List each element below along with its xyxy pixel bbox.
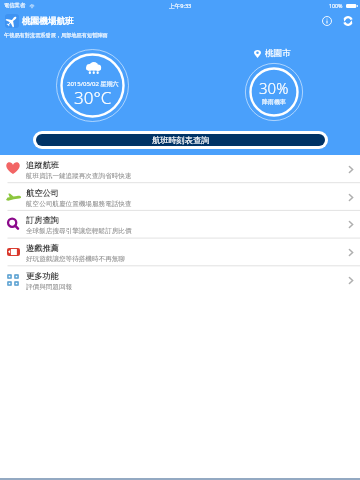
button[interactable]: 更多功能 xyxy=(0,266,360,294)
staticText: 30°C xyxy=(74,86,112,109)
staticText: 桃園市 xyxy=(265,48,291,59)
button[interactable]: 追蹤航班 xyxy=(0,155,360,183)
staticText: 桃園機場航班 xyxy=(22,16,74,27)
staticText: 遊戲推薦 xyxy=(26,243,59,253)
staticText: 100% xyxy=(329,2,343,9)
button[interactable]: 航班時刻表查詢 xyxy=(36,134,325,146)
staticText: 上午9:33 xyxy=(169,2,192,10)
button[interactable]: 桃園機場航班 xyxy=(5,14,74,28)
button[interactable]: Refresh xyxy=(340,13,356,29)
button[interactable]: 遊戲推薦 xyxy=(0,238,360,266)
staticText: 追蹤航班 xyxy=(26,160,59,170)
staticText: 降雨機率 xyxy=(262,98,286,106)
staticText: 更多功能 xyxy=(26,271,59,281)
staticText: 航空公司航廈位置機場服務電話快查 xyxy=(26,200,132,208)
staticText: 訂房查詢 xyxy=(26,215,59,225)
staticText: 好玩遊戲讓您等待搭機時不再無聊 xyxy=(26,255,125,263)
staticText: 航空公司 xyxy=(26,188,59,198)
staticText: 航班資訊一鍵追蹤再次查詢省時快速 xyxy=(26,172,132,180)
button[interactable]: 航空公司 xyxy=(0,183,360,211)
staticText: 航班時刻表查詢 xyxy=(152,135,210,145)
staticText: 全球飯店搜尋引擎讓您輕鬆訂房比價 xyxy=(26,227,132,235)
staticText: 電信業者 xyxy=(4,2,26,9)
staticText: 午後易有對流雲系發展，局部地區有短暫陣雨 xyxy=(4,32,108,39)
button[interactable]: 訂房查詢 xyxy=(0,210,360,238)
staticText: 2015/05/02 星期六 xyxy=(67,80,119,88)
staticText: 評價與問題回報 xyxy=(26,283,73,291)
staticText: 30% xyxy=(259,78,289,98)
button[interactable]: Info xyxy=(319,13,335,29)
